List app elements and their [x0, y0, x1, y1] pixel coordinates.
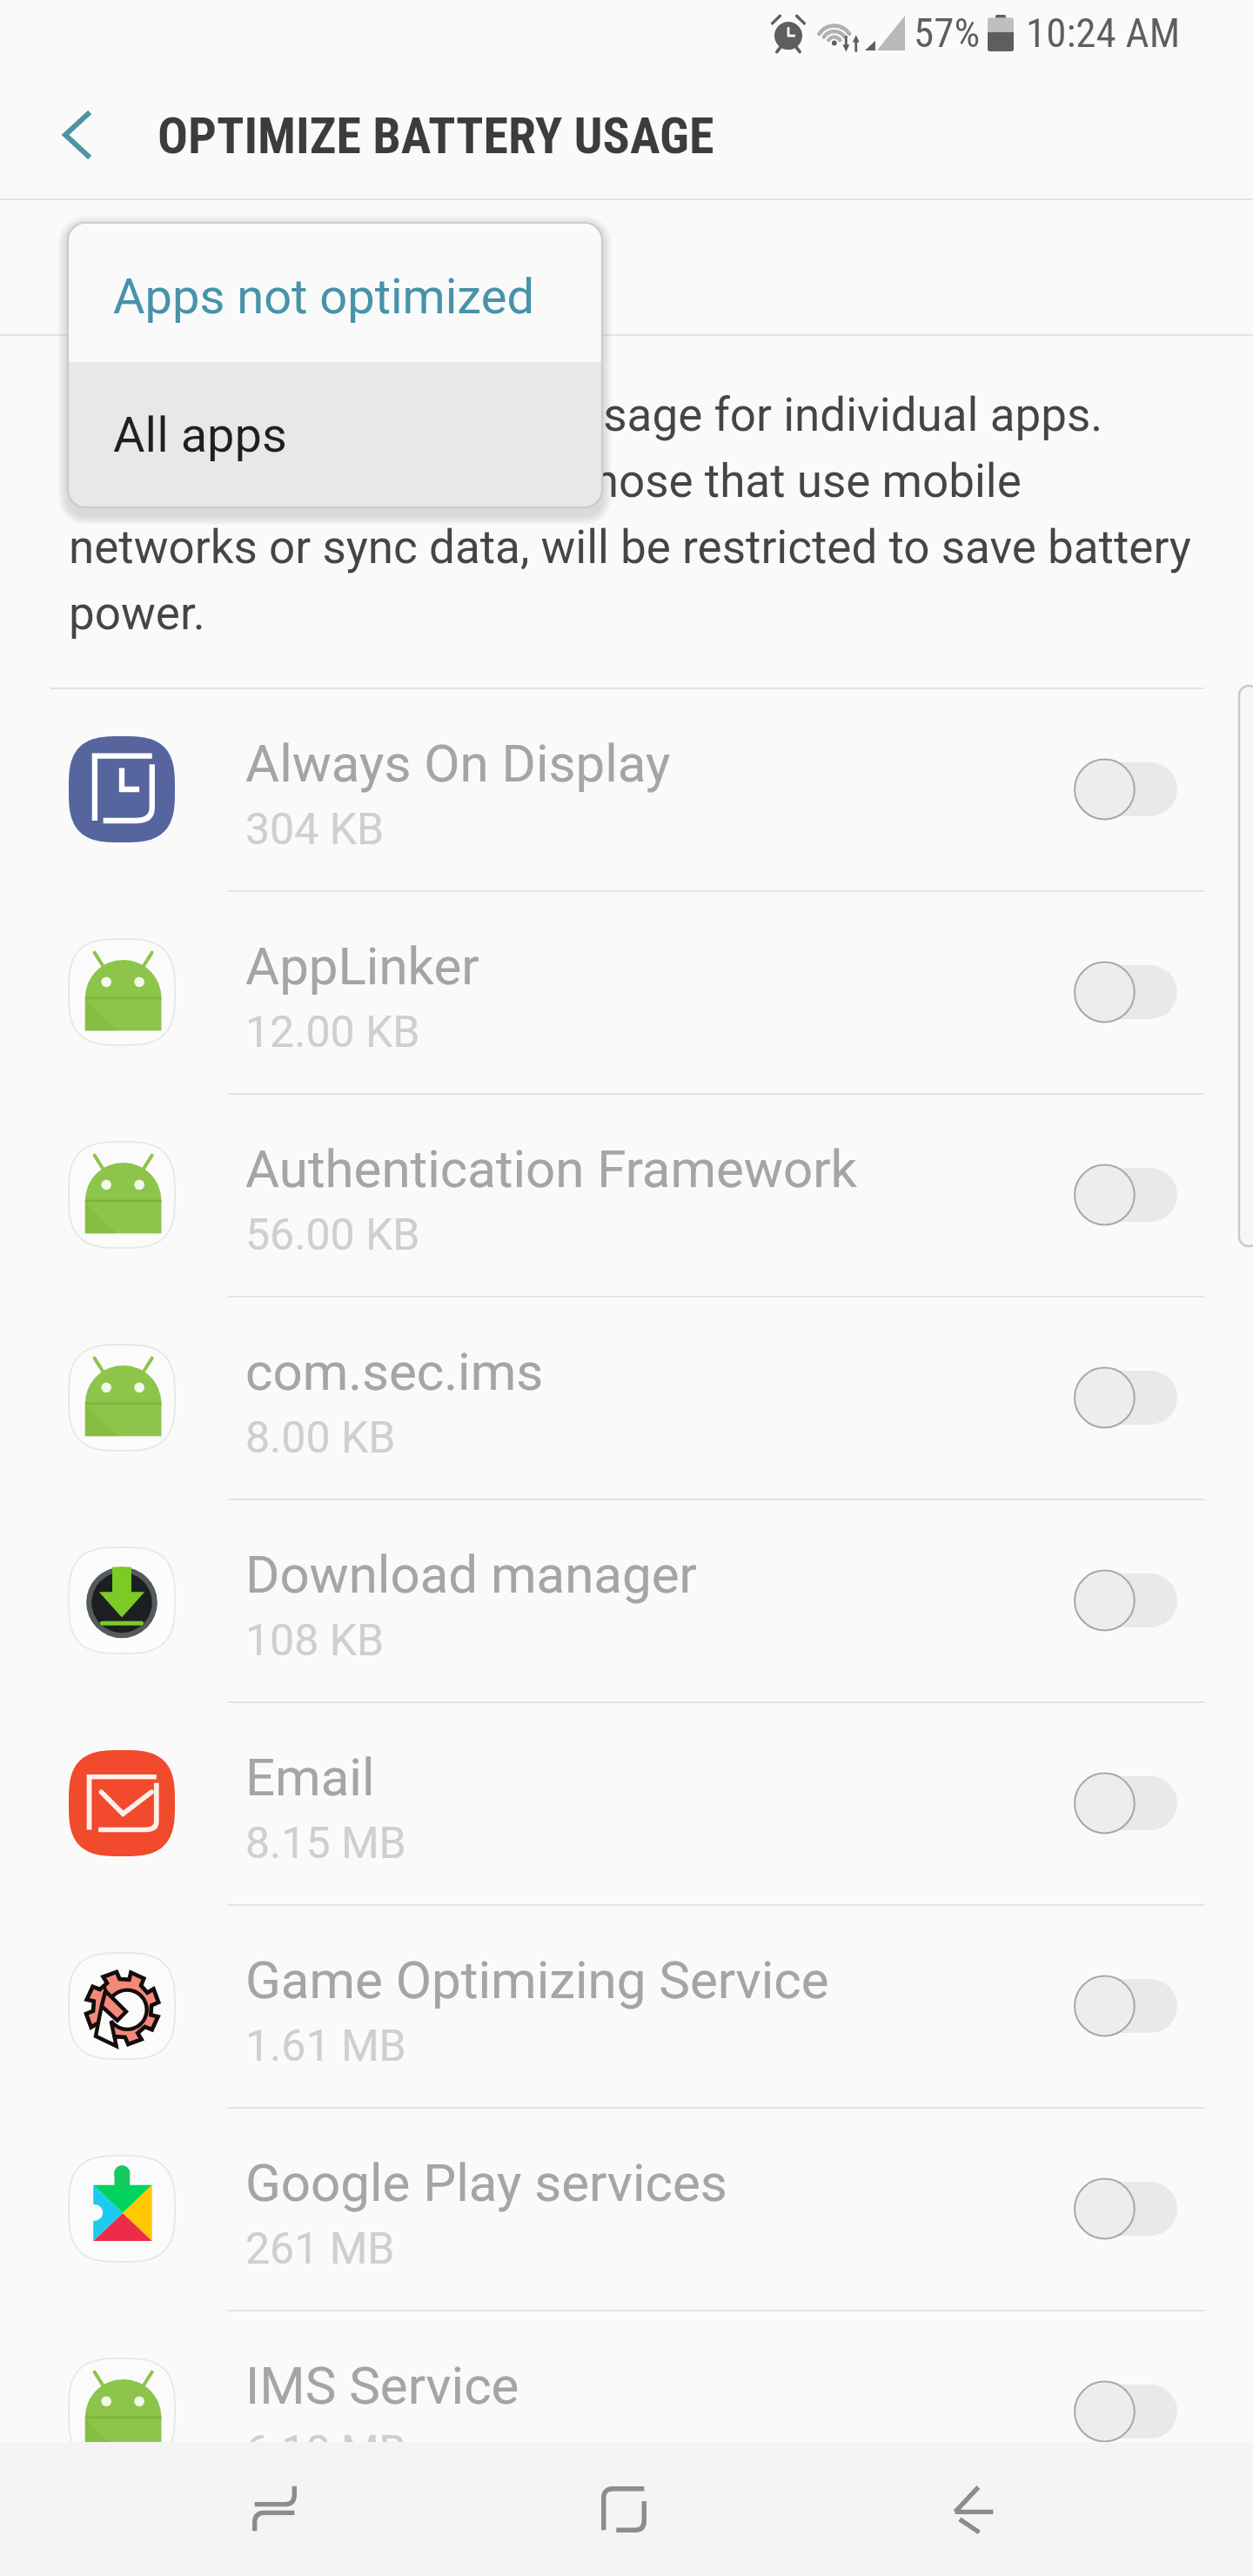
- staticText: Game Optimizing Service: [245, 1949, 829, 2010]
- button[interactable]: Toggle com.sec.ims: [1075, 1360, 1177, 1435]
- staticText: 12.00 KB: [245, 1007, 420, 1058]
- staticText: All apps: [113, 406, 287, 464]
- staticText: 1.61 MB: [245, 2021, 406, 2072]
- staticText: 6.18 MB: [245, 2426, 406, 2478]
- button[interactable]: IMS Service: [0, 2310, 1253, 2512]
- button[interactable]: Toggle IMS Service: [1075, 2374, 1177, 2449]
- button[interactable]: Apps not optimized: [68, 223, 602, 362]
- button[interactable]: Game Optimizing Service: [0, 1904, 1253, 2107]
- staticText: 8.15 MB: [245, 1818, 406, 1869]
- staticText: Optimize battery usage for individual ap…: [69, 388, 1253, 641]
- button[interactable]: Email: [0, 1701, 1253, 1904]
- staticText: OPTIMIZE BATTERY USAGE: [157, 106, 714, 165]
- button[interactable]: Toggle Google Play services: [1075, 2171, 1177, 2246]
- button[interactable]: Home: [519, 2442, 728, 2576]
- button[interactable]: Navigate up: [35, 104, 118, 165]
- staticText: Google Play services: [245, 2152, 727, 2213]
- staticText: Authentication Framework: [245, 1138, 857, 1199]
- staticText: Email: [245, 1747, 375, 1808]
- staticText: Download manager: [245, 1544, 697, 1605]
- button[interactable]: com.sec.ims: [0, 1296, 1253, 1499]
- staticText: AppLinker: [245, 936, 479, 996]
- staticText: Apps not optimized: [113, 268, 534, 325]
- staticText: 10:24 AM: [1026, 9, 1181, 57]
- button[interactable]: Toggle Authentication Framework: [1075, 1157, 1177, 1232]
- button[interactable]: Back: [870, 2442, 1079, 2576]
- staticText: Always On Display: [245, 733, 671, 794]
- button[interactable]: Toggle Always On Display: [1075, 752, 1177, 827]
- staticText: 108 KB: [245, 1615, 385, 1667]
- button[interactable]: Authentication Framework: [0, 1093, 1253, 1296]
- button[interactable]: Always On Display: [0, 688, 1253, 890]
- staticText: 8.00 KB: [245, 1412, 396, 1464]
- button[interactable]: Recent apps: [170, 2442, 379, 2576]
- button[interactable]: AppLinker: [0, 890, 1253, 1093]
- button[interactable]: Toggle Download manager: [1075, 1563, 1177, 1638]
- button[interactable]: Download manager: [0, 1499, 1253, 1701]
- button[interactable]: Toggle AppLinker: [1075, 955, 1177, 1030]
- staticText: 57%: [914, 9, 981, 57]
- staticText: 261 MB: [245, 2224, 395, 2275]
- button[interactable]: All apps: [68, 362, 602, 507]
- staticText: 304 KB: [245, 804, 385, 855]
- button[interactable]: Toggle Game Optimizing Service: [1075, 1969, 1177, 2043]
- button[interactable]: Toggle Email: [1075, 1766, 1177, 1841]
- staticText: 56.00 KB: [245, 1210, 420, 1261]
- staticText: IMS Service: [245, 2355, 519, 2416]
- staticText: com.sec.ims: [245, 1341, 544, 1402]
- button[interactable]: Google Play services: [0, 2107, 1253, 2310]
